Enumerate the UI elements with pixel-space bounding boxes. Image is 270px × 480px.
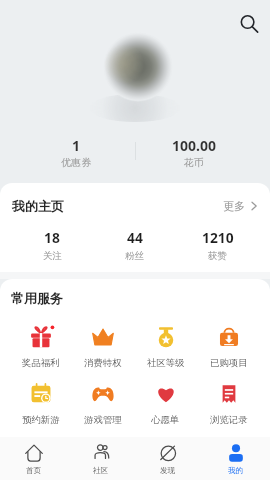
staticText: 奖品福利 [22,357,60,369]
staticText: 我的 [228,466,244,476]
button[interactable]: 我的 [202,442,270,476]
staticText: 18 [44,228,60,247]
button[interactable]: 心愿单 [134,383,197,426]
staticText: 优惠券 [61,156,91,169]
staticText: 社区 [93,466,109,476]
button[interactable]: Search [234,9,264,39]
staticText: 获赞 [208,250,227,262]
staticText: 关注 [43,250,62,262]
button[interactable]: 44 [93,228,176,262]
button[interactable]: 奖品福利 [10,326,72,369]
button[interactable]: 游戏管理 [72,383,134,426]
staticText: 粉丝 [125,250,144,262]
staticText: 1210 [202,228,234,247]
button[interactable]: 更多 [223,199,259,213]
staticText: 预约新游 [22,414,60,426]
staticText: 1 [72,136,81,155]
staticText: 游戏管理 [84,414,122,426]
button[interactable]: 1 [17,136,135,169]
button[interactable]: 已购项目 [197,326,260,369]
staticText: 发现 [160,466,176,476]
staticText: 100.00 [172,136,216,155]
button[interactable]: 18 [11,228,93,262]
staticText: 浏览记录 [210,414,248,426]
staticText: 心愿单 [151,414,180,426]
staticText: 常用服务 [11,290,63,306]
button[interactable]: 首页 [0,442,67,476]
staticText: 更多 [223,199,245,213]
staticText: 社区等级 [147,357,185,369]
button[interactable]: 100.00 [135,136,253,169]
staticText: 我的主页 [12,198,64,214]
staticText: 消费特权 [84,357,122,369]
staticText: 花币 [184,156,204,169]
staticText: 44 [127,228,143,247]
button[interactable]: 发现 [134,442,202,476]
button[interactable]: 消费特权 [72,326,134,369]
staticText: 首页 [26,466,42,476]
button[interactable]: 社区等级 [134,326,197,369]
staticText: 已购项目 [210,357,248,369]
button[interactable]: 浏览记录 [197,383,260,426]
button[interactable]: 预约新游 [10,383,72,426]
button[interactable]: 1210 [176,228,259,262]
button[interactable]: 社区 [67,442,134,476]
